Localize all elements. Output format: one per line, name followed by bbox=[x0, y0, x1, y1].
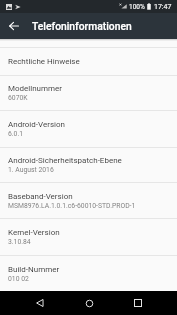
button[interactable]: Rechtliche Hinweise bbox=[0, 48, 177, 75]
staticText: 6070K bbox=[8, 94, 28, 102]
staticText: Baseband-Version bbox=[8, 192, 73, 201]
staticText: Android-Version bbox=[8, 120, 65, 129]
button[interactable]: Kernel-Version bbox=[0, 219, 177, 255]
button[interactable]: Recent apps bbox=[126, 291, 150, 315]
staticText: Modellnummer bbox=[8, 84, 63, 93]
staticText: Rechtliche Hinweise bbox=[8, 57, 80, 66]
staticText: Telefoninformationen bbox=[32, 20, 132, 32]
staticText: 1. August 2016 bbox=[8, 166, 54, 174]
button[interactable]: Modellnummer bbox=[0, 76, 177, 110]
staticText: 100% bbox=[129, 3, 145, 11]
staticText: 17:47 bbox=[154, 3, 172, 11]
staticText: Android-Sicherheitspatch-Ebene bbox=[8, 156, 122, 165]
button[interactable]: Navigate up bbox=[0, 13, 27, 39]
staticText: 3.10.84 bbox=[8, 238, 31, 246]
staticText: Kernel-Version bbox=[8, 228, 60, 237]
staticText: Build-Nummer bbox=[8, 265, 60, 274]
button[interactable]: Back bbox=[28, 291, 52, 315]
button[interactable]: Baseband-Version bbox=[0, 183, 177, 218]
staticText: MSM8976.LA.1.0.1.c6-60010-STD.PROD-1 bbox=[8, 202, 136, 210]
button[interactable]: Android-Sicherheitspatch-Ebene bbox=[0, 148, 177, 182]
button[interactable]: Home bbox=[77, 291, 101, 315]
button[interactable]: Android-Version bbox=[0, 111, 177, 147]
staticText: 6.0.1 bbox=[8, 130, 24, 138]
button[interactable]: Build-Nummer bbox=[0, 256, 177, 291]
staticText: 010 02 bbox=[8, 275, 29, 283]
